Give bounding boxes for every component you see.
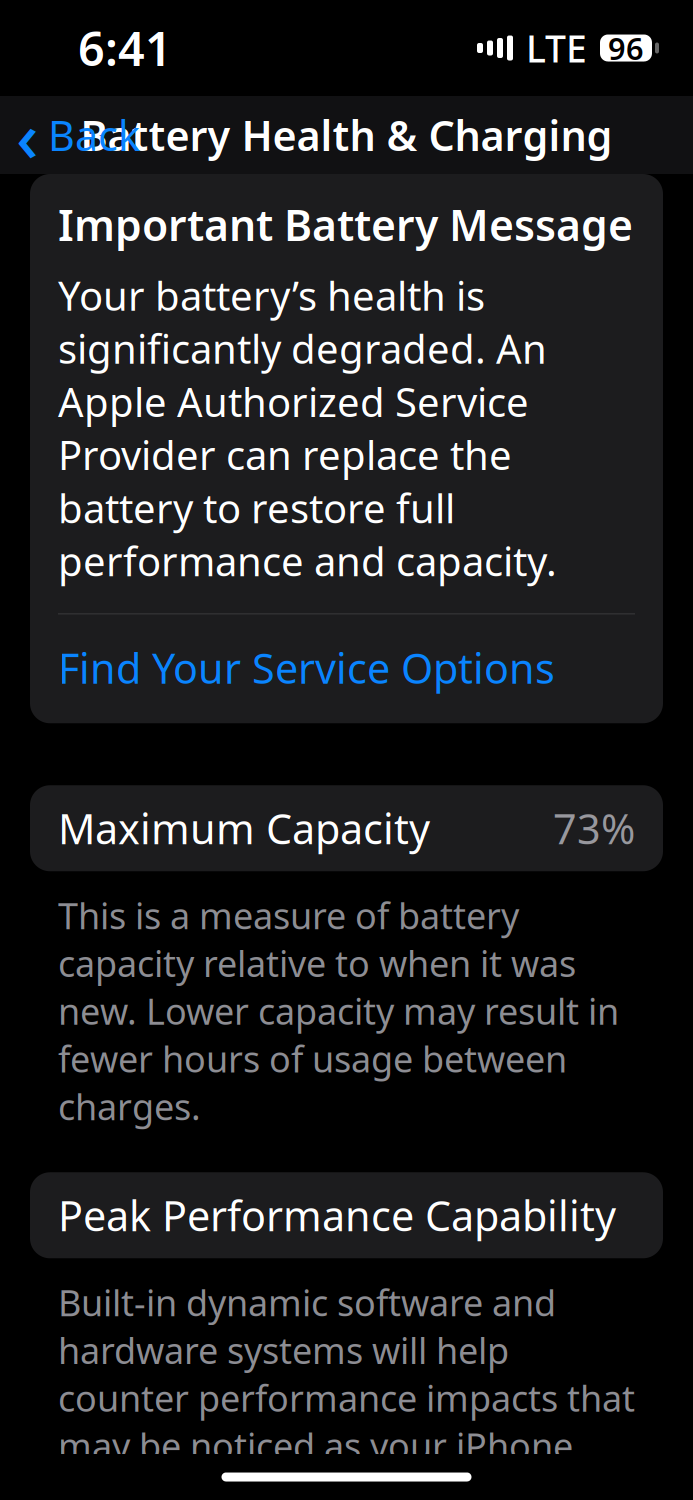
staticText: 96 [608, 28, 644, 68]
staticText: Built-in dynamic software and hardware s… [58, 1278, 635, 1500]
staticText: Important Battery Message [58, 196, 633, 253]
staticText: Battery Health & Charging [80, 108, 612, 162]
staticText: Back [48, 108, 140, 162]
staticText: This is a measure of battery capacity re… [58, 891, 619, 1130]
button[interactable]: ‹ [0, 104, 158, 166]
button[interactable]: Peak Performance Capability [30, 1172, 663, 1258]
staticText: Your battery’s health is significantly d… [58, 269, 557, 587]
staticText: Maximum Capacity [58, 801, 430, 856]
staticText: 73% [553, 801, 635, 856]
button[interactable]: Find Your Service Options [58, 614, 635, 723]
staticText: LTE [526, 23, 587, 73]
staticText: Peak Performance Capability [58, 1188, 616, 1243]
staticText: Find Your Service Options [58, 640, 555, 695]
staticText: ‹ [16, 89, 39, 181]
staticText: 6:41 [78, 17, 172, 79]
